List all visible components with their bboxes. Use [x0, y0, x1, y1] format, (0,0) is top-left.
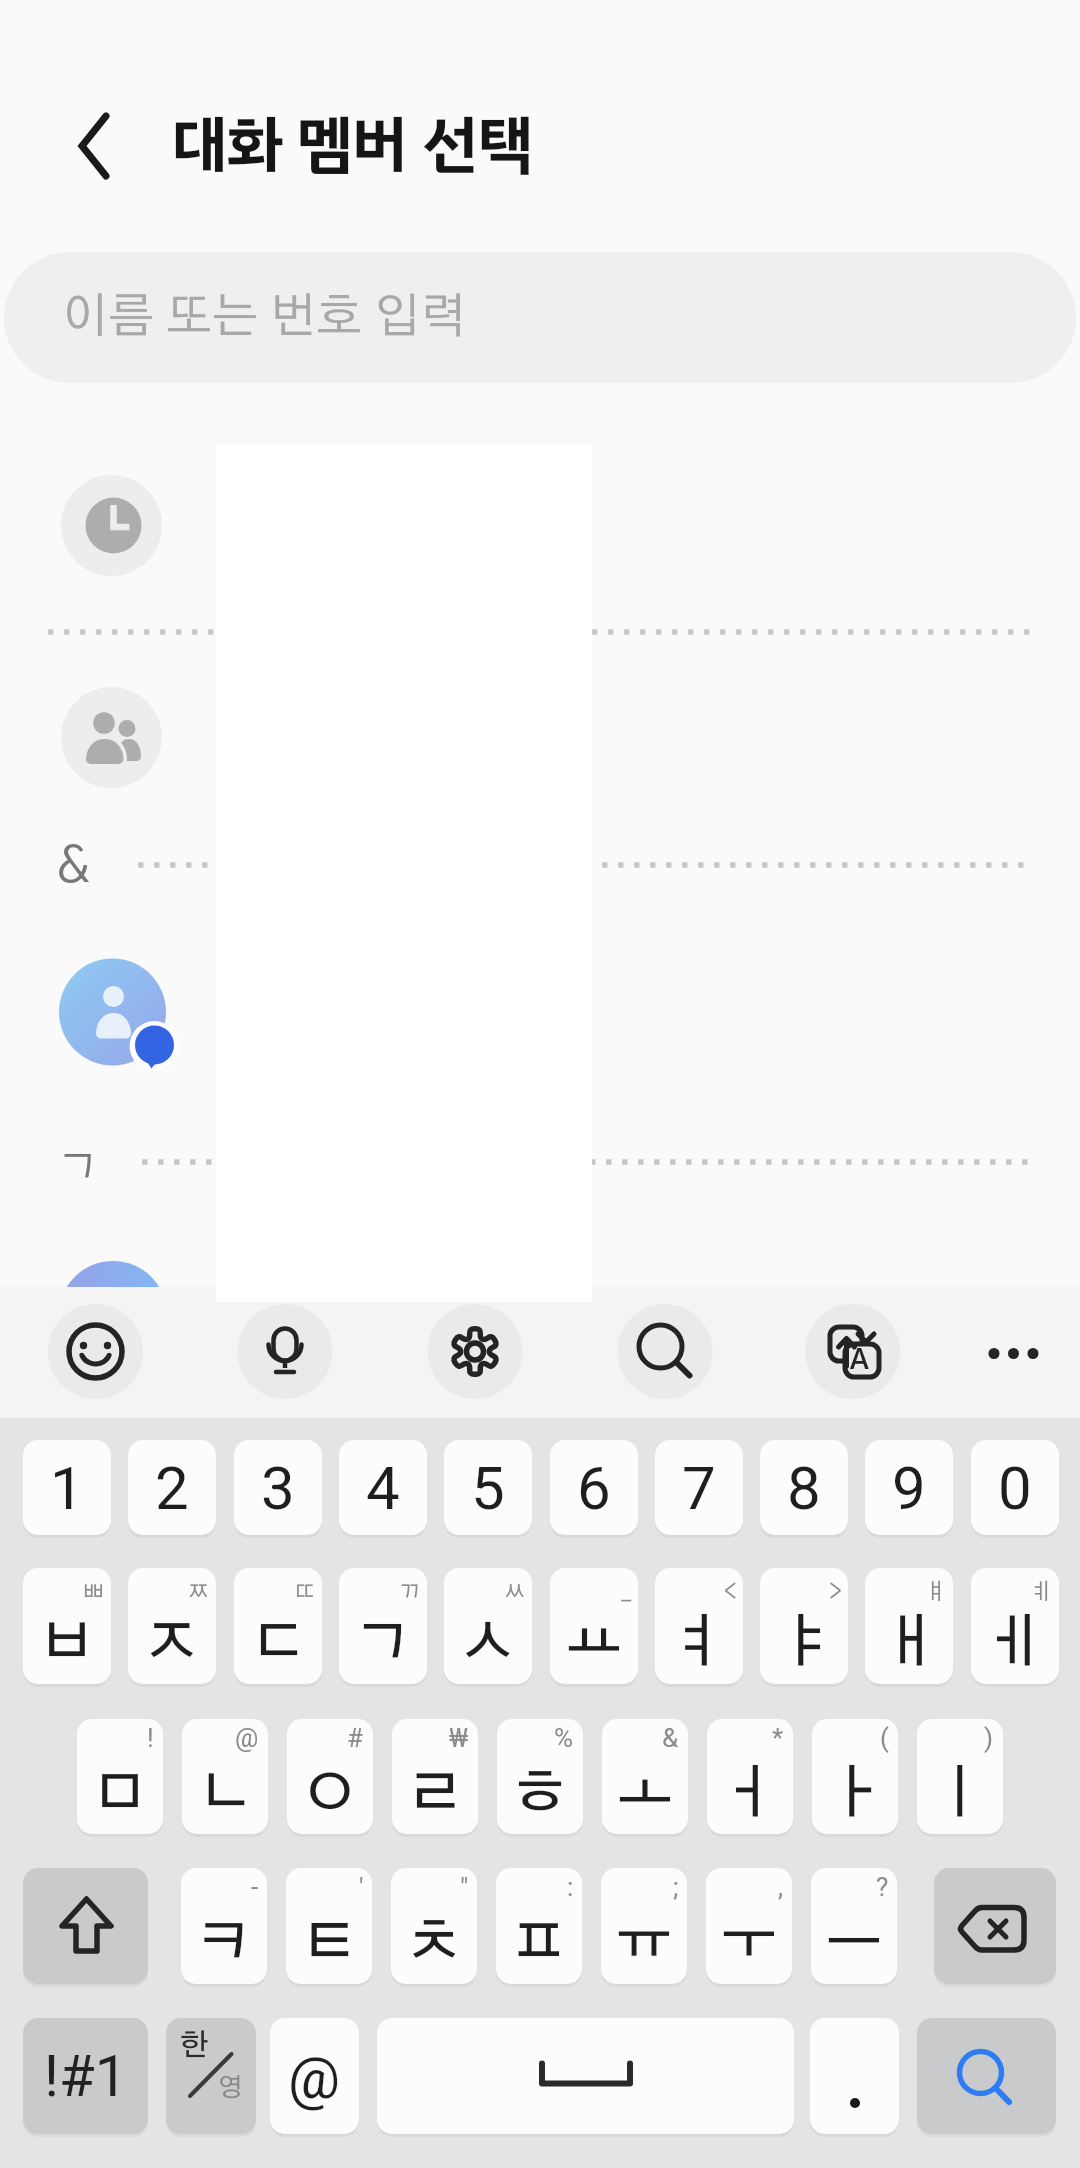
staticText: @	[288, 2044, 341, 2112]
staticText: ㅠ	[615, 1915, 673, 1973]
staticText: ㅁ	[91, 1766, 149, 1824]
button[interactable]	[934, 1868, 1056, 1984]
button[interactable]: 3	[234, 1440, 322, 1535]
button[interactable]	[47, 1303, 143, 1399]
staticText: ㅛ	[565, 1615, 623, 1673]
staticText: 9	[892, 1453, 926, 1523]
staticText: ㅑ	[775, 1615, 833, 1673]
staticText: A	[850, 1347, 869, 1374]
button[interactable]: ㅔ	[971, 1568, 1059, 1684]
button[interactable]: 9	[865, 1440, 953, 1535]
button[interactable]: ㅈ	[128, 1568, 216, 1684]
button[interactable]: ㅑ	[760, 1568, 848, 1684]
button[interactable]: ㅌ	[286, 1868, 372, 1984]
button[interactable]	[804, 1303, 900, 1399]
staticText: ;	[673, 1872, 679, 1902]
staticText: 7	[682, 1453, 716, 1523]
button[interactable]: ㅕ	[655, 1568, 743, 1684]
button[interactable]	[237, 1303, 333, 1399]
button[interactable]: 2	[128, 1440, 216, 1535]
button[interactable]: 5	[444, 1440, 532, 1535]
button[interactable]: ㅜ	[706, 1868, 792, 1984]
button[interactable]	[917, 2018, 1056, 2134]
button[interactable]: ㄷ	[234, 1568, 322, 1684]
staticText: '	[359, 1872, 364, 1902]
staticText: ㅡ	[825, 1915, 883, 1973]
button[interactable]	[0, 672, 1080, 802]
staticText: (	[880, 1723, 889, 1753]
button[interactable]: ㅂ	[23, 1568, 111, 1684]
staticText: &	[56, 841, 90, 893]
button[interactable]: ㄹ	[392, 1719, 478, 1834]
staticText: ?	[876, 1872, 889, 1902]
button[interactable]: !#1	[23, 2018, 148, 2134]
button[interactable]: ㅅ	[444, 1568, 532, 1684]
staticText: 6	[577, 1453, 611, 1523]
button[interactable]	[23, 1868, 148, 1984]
button[interactable]: 7	[655, 1440, 743, 1535]
button[interactable]: ㅐ	[865, 1568, 953, 1684]
button[interactable]	[166, 2018, 256, 2134]
button[interactable]	[965, 1303, 1061, 1399]
staticText: <	[724, 1581, 737, 1604]
staticText: ㅐ	[880, 1615, 938, 1673]
button[interactable]: ㅛ	[550, 1568, 638, 1684]
button[interactable]: @	[270, 2018, 359, 2134]
button[interactable]: ㅓ	[707, 1719, 793, 1834]
staticText: ㅎ	[511, 1766, 569, 1824]
button[interactable]	[377, 2018, 794, 2134]
button[interactable]	[617, 1303, 713, 1399]
staticText: _	[621, 1581, 632, 1604]
button[interactable]: ㄴ	[182, 1719, 268, 1834]
button[interactable]	[55, 110, 127, 182]
button[interactable]: 1	[23, 1440, 111, 1535]
button[interactable]: ㅍ	[496, 1868, 582, 1984]
button[interactable]: 6	[550, 1440, 638, 1535]
button[interactable]	[0, 460, 1080, 590]
staticText: "	[460, 1872, 469, 1902]
button[interactable]: ㅡ	[811, 1868, 897, 1984]
button[interactable]: ㅏ	[812, 1719, 898, 1834]
staticText: 대화 멤버 선택	[172, 98, 534, 191]
staticText: @	[235, 1723, 259, 1753]
button[interactable]: 4	[339, 1440, 427, 1535]
staticText: 이름 또는 번호 입력	[62, 294, 467, 342]
staticText: ㄱ	[57, 1146, 99, 1188]
staticText: !	[147, 1723, 154, 1753]
staticText: ₩	[449, 1723, 469, 1753]
staticText: ㅏ	[826, 1766, 884, 1824]
staticText: ㅔ	[986, 1615, 1044, 1673]
button[interactable]: 이름 또는 번호 입력	[4, 252, 1076, 383]
button[interactable]: 0	[971, 1440, 1059, 1535]
staticText: ㅍ	[510, 1915, 568, 1973]
button[interactable]: 8	[760, 1440, 848, 1535]
button[interactable]	[0, 948, 1080, 1078]
staticText: ㄲ	[398, 1581, 421, 1604]
staticText: ㅉ	[187, 1581, 210, 1604]
staticText: ㅃ	[82, 1581, 105, 1604]
staticText: ,	[778, 1872, 784, 1902]
button[interactable]	[810, 2018, 899, 2134]
button[interactable]	[427, 1303, 523, 1399]
button[interactable]: ㅁ	[77, 1719, 163, 1834]
staticText: ㅋ	[195, 1915, 253, 1973]
staticText: 영	[218, 2075, 243, 2101]
button[interactable]: ㅣ	[917, 1719, 1003, 1834]
staticText: ㅕ	[670, 1615, 728, 1673]
button[interactable]: ㄱ	[339, 1568, 427, 1684]
staticText: ㅓ	[721, 1766, 779, 1824]
staticText: 3	[261, 1453, 295, 1523]
button[interactable]: ㅗ	[602, 1719, 688, 1834]
button[interactable]: ㅠ	[601, 1868, 687, 1984]
button[interactable]: ㅊ	[391, 1868, 477, 1984]
staticText: ㄴ	[196, 1766, 254, 1824]
staticText: ㅆ	[503, 1581, 526, 1604]
staticText: ㅗ	[616, 1766, 674, 1824]
button[interactable]: ㅇ	[287, 1719, 373, 1834]
button[interactable]: ㅋ	[181, 1868, 267, 1984]
staticText: %	[554, 1723, 574, 1753]
staticText: ㄷ	[249, 1615, 307, 1673]
staticText: ㄸ	[293, 1581, 316, 1604]
button[interactable]: ㅎ	[497, 1719, 583, 1834]
staticText: ㅣ	[931, 1766, 989, 1824]
